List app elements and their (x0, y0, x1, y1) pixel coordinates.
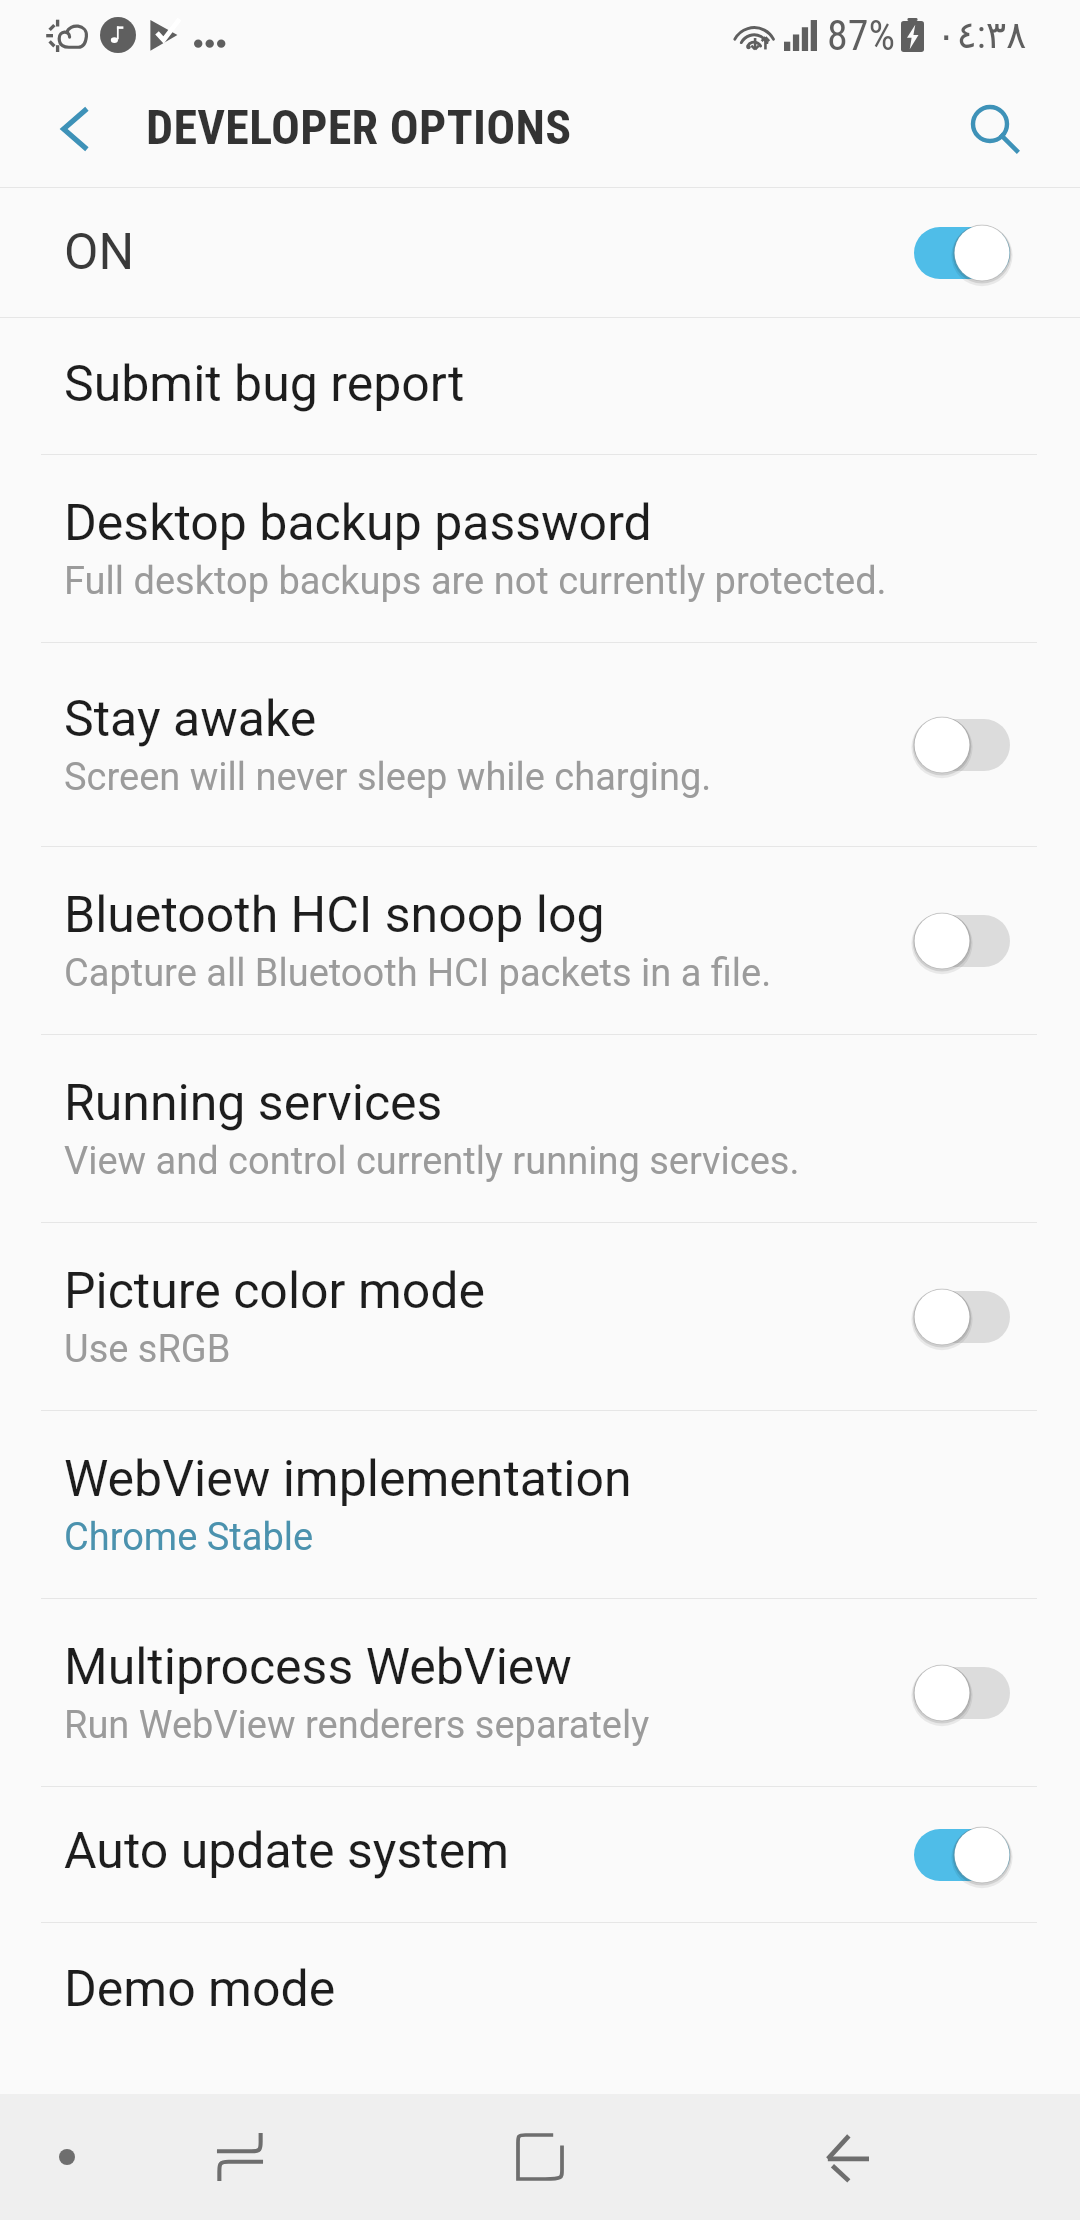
staticText: Demo mode (64, 1960, 336, 2019)
staticText: View and control currently running servi… (64, 1139, 800, 1184)
button[interactable]: WebView implementation (0, 1411, 1080, 1598)
button[interactable]: Navigate up (32, 87, 116, 171)
button[interactable]: Demo mode (0, 1923, 1080, 2059)
button[interactable]: Running services (0, 1035, 1080, 1222)
staticText: Screen will never sleep while charging. (64, 755, 712, 800)
staticText: Run WebView renderers separately (64, 1703, 650, 1748)
staticText: ON (64, 223, 135, 282)
button[interactable]: Auto update system (0, 1787, 1080, 1922)
button[interactable]: Picture color mode (914, 1288, 1010, 1346)
staticText: WebView implementation (64, 1450, 632, 1509)
button[interactable]: Bluetooth HCI snoop log (914, 912, 1010, 970)
button[interactable]: Submit bug report (0, 318, 1080, 454)
staticText: Bluetooth HCI snoop log (64, 886, 605, 945)
button[interactable]: Recent apps (200, 2117, 280, 2197)
button[interactable]: Search (956, 89, 1036, 169)
button[interactable]: Picture color mode (0, 1223, 1080, 1410)
staticText: DEVELOPER OPTIONS (146, 99, 572, 155)
button[interactable]: Multiprocess WebView (0, 1599, 1080, 1786)
button[interactable]: Multiprocess WebView (914, 1664, 1010, 1722)
staticText: Stay awake (64, 690, 317, 749)
button[interactable]: Auto update system (914, 1826, 1010, 1884)
button[interactable]: Home (498, 2115, 582, 2199)
staticText: Chrome Stable (64, 1515, 314, 1560)
staticText: Full desktop backups are not currently p… (64, 559, 887, 604)
staticText: Picture color mode (64, 1262, 485, 1321)
button[interactable]: Bluetooth HCI snoop log (0, 847, 1080, 1034)
button[interactable]: Desktop backup password (0, 455, 1080, 642)
staticText: ٠٤:٣٨ (936, 13, 1027, 58)
staticText: Multiprocess WebView (64, 1638, 572, 1697)
button[interactable]: Stay awake (0, 643, 1080, 846)
button[interactable]: Developer options on (914, 224, 1010, 282)
staticText: Use sRGB (64, 1327, 231, 1372)
button[interactable]: Notifications (30, 2120, 104, 2194)
staticText: Capture all Bluetooth HCI packets in a f… (64, 951, 772, 996)
staticText: Desktop backup password (64, 494, 652, 553)
button[interactable]: Stay awake (914, 716, 1010, 774)
staticText: Running services (64, 1074, 443, 1133)
staticText: 87% (827, 11, 896, 60)
button[interactable]: Back (806, 2115, 890, 2199)
staticText: Auto update system (64, 1822, 509, 1881)
staticText: Submit bug report (64, 355, 465, 414)
button[interactable]: ON (0, 188, 1080, 317)
